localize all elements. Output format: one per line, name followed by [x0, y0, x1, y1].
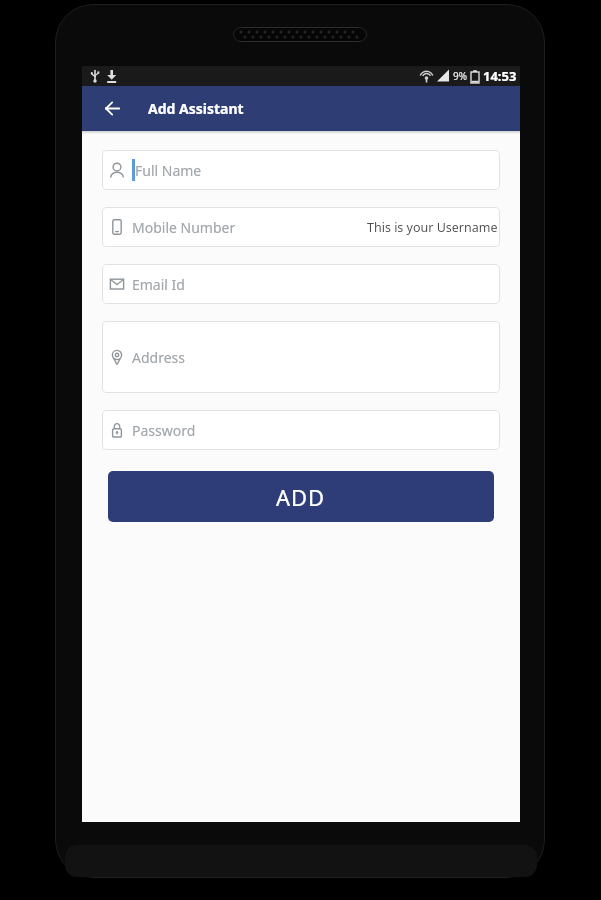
staticText: Mobile Number	[132, 218, 236, 237]
button[interactable]: Full Name	[102, 150, 500, 190]
button[interactable]	[91, 86, 133, 131]
staticText: This is your Username	[367, 219, 498, 236]
button[interactable]: Email Id	[102, 264, 500, 304]
staticText: ADD	[276, 482, 326, 512]
button[interactable]: Password	[102, 410, 500, 450]
button[interactable]: Mobile Number	[102, 207, 500, 247]
staticText: Password	[132, 421, 196, 440]
staticText: Full Name	[135, 161, 202, 180]
staticText: Email Id	[132, 275, 185, 294]
staticText: Add Assistant	[148, 99, 244, 118]
staticText: Address	[132, 348, 185, 367]
button[interactable]: ADD	[108, 471, 494, 522]
staticText: 14:53	[483, 67, 517, 85]
button[interactable]: Address	[102, 321, 500, 393]
staticText: 9%	[453, 69, 468, 83]
